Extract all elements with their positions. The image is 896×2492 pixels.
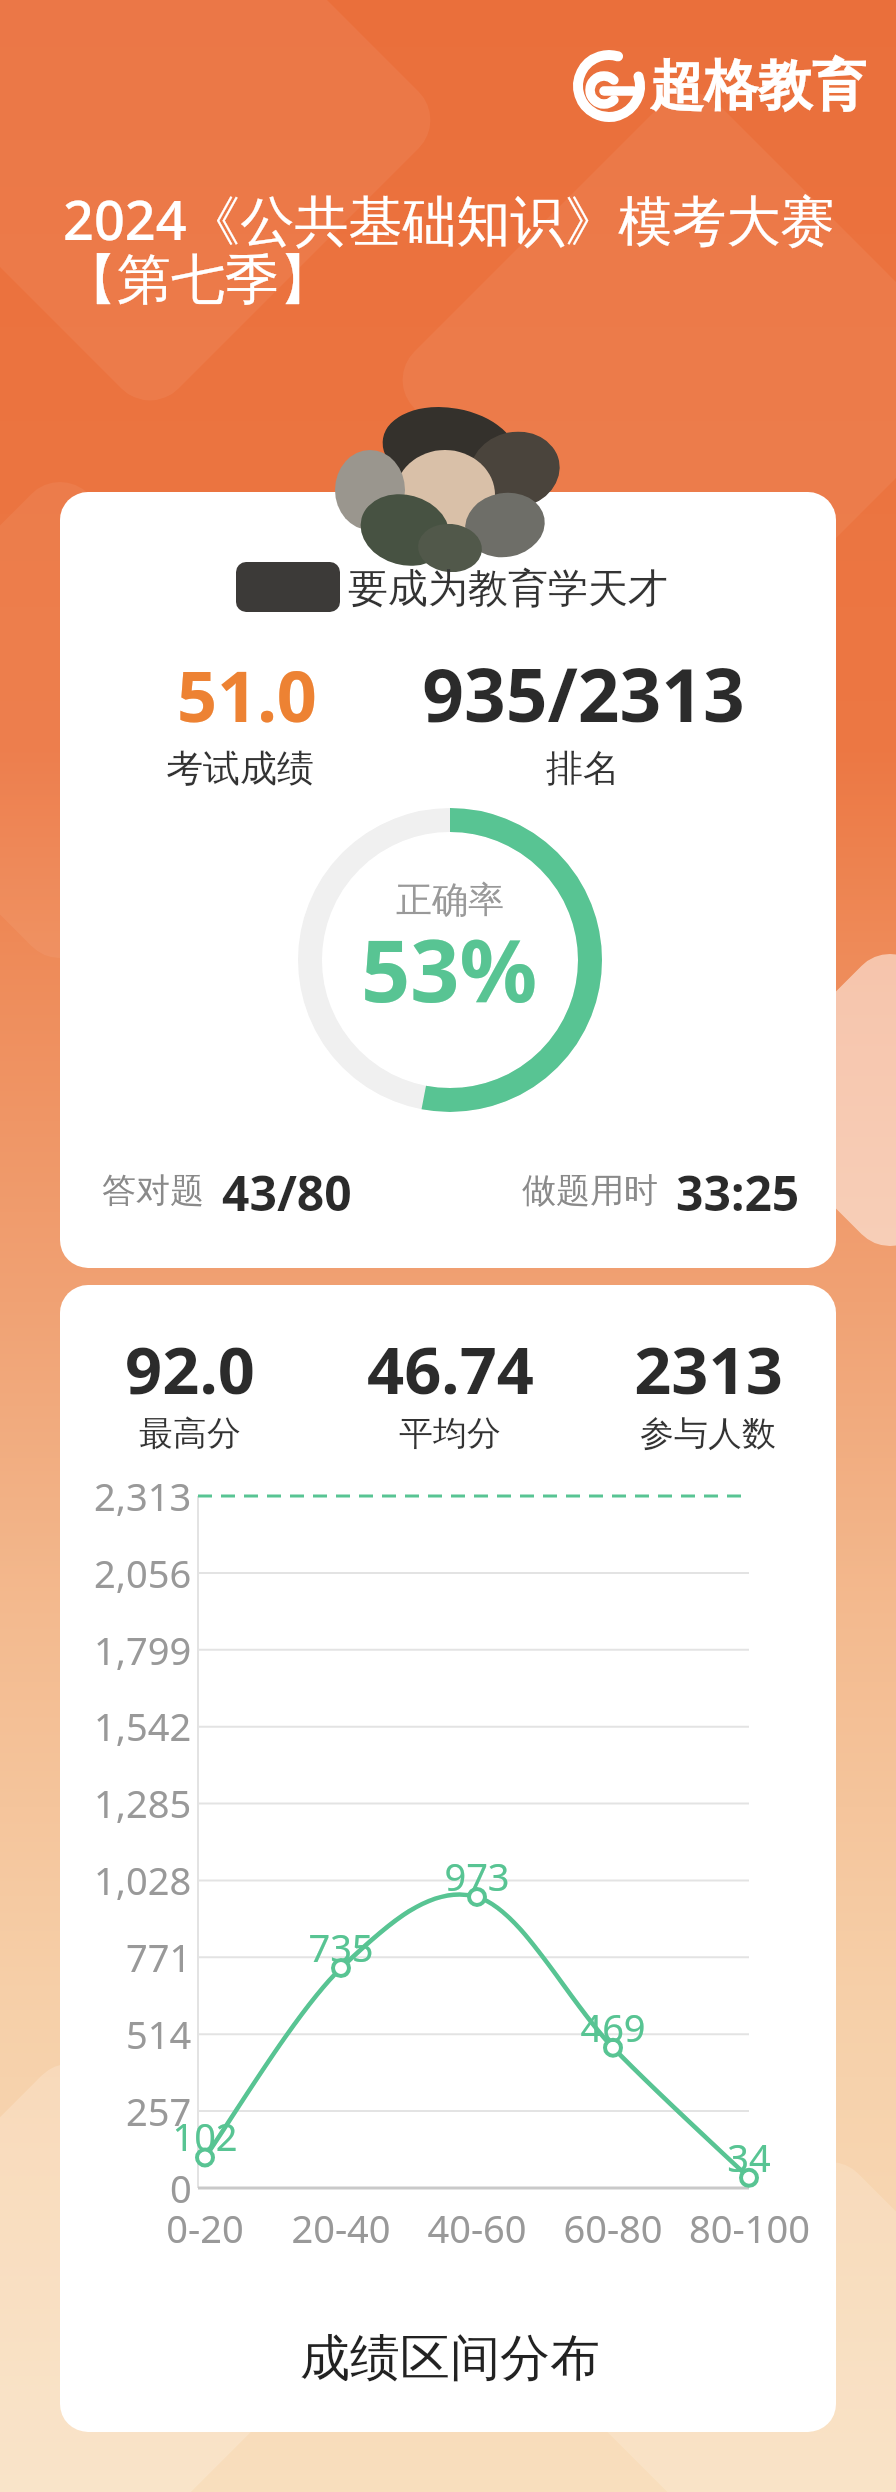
- staticText: 1,285: [94, 1777, 192, 1829]
- staticText: 【第七季】: [63, 246, 333, 314]
- staticText: 排名: [546, 745, 620, 792]
- staticText: 973: [444, 1850, 510, 1902]
- staticText: 1,028: [94, 1854, 192, 1906]
- staticText: 2313: [634, 1325, 783, 1414]
- staticText: 34: [727, 2131, 771, 2183]
- staticText: 514: [126, 2008, 192, 2060]
- staticText: 771: [126, 1931, 192, 1983]
- staticText: 考试成绩: [166, 745, 314, 792]
- staticText: 257: [126, 2085, 192, 2137]
- staticText: 43/80: [222, 1160, 352, 1220]
- staticText: 要成为教育学天才: [348, 563, 668, 613]
- staticText: 51.0: [177, 647, 317, 742]
- staticText: 53%: [361, 910, 537, 1027]
- staticText: 2024《公共基础知识》模考大赛: [63, 182, 835, 256]
- staticText: 33:25: [676, 1160, 800, 1220]
- staticText: 0: [170, 2162, 192, 2214]
- staticText: 超格教育: [650, 52, 866, 120]
- staticText: 735: [308, 1921, 374, 1973]
- staticText: 正确率: [396, 877, 504, 922]
- staticText: 60-80: [563, 2202, 663, 2254]
- staticText: 参与人数: [640, 1412, 776, 1455]
- staticText: 1,799: [94, 1624, 192, 1676]
- staticText: 46.74: [367, 1325, 534, 1414]
- staticText: 0-20: [166, 2202, 244, 2254]
- staticText: 92.0: [125, 1325, 255, 1414]
- staticText: 80-100: [689, 2202, 810, 2254]
- staticText: 2,056: [94, 1547, 192, 1599]
- staticText: 2,313: [94, 1470, 192, 1522]
- staticText: 成绩区间分布: [300, 2327, 600, 2390]
- staticText: 做题用时: [522, 1169, 658, 1212]
- staticText: 最高分: [139, 1412, 241, 1455]
- staticText: 935/2313: [422, 644, 745, 743]
- staticText: 102: [172, 2110, 238, 2162]
- staticText: 469: [580, 2001, 646, 2053]
- staticText: 1,542: [94, 1700, 192, 1752]
- staticText: 40-60: [427, 2202, 527, 2254]
- staticText: 答对题: [102, 1169, 204, 1212]
- staticText: 20-40: [291, 2202, 391, 2254]
- staticText: 平均分: [399, 1412, 501, 1455]
